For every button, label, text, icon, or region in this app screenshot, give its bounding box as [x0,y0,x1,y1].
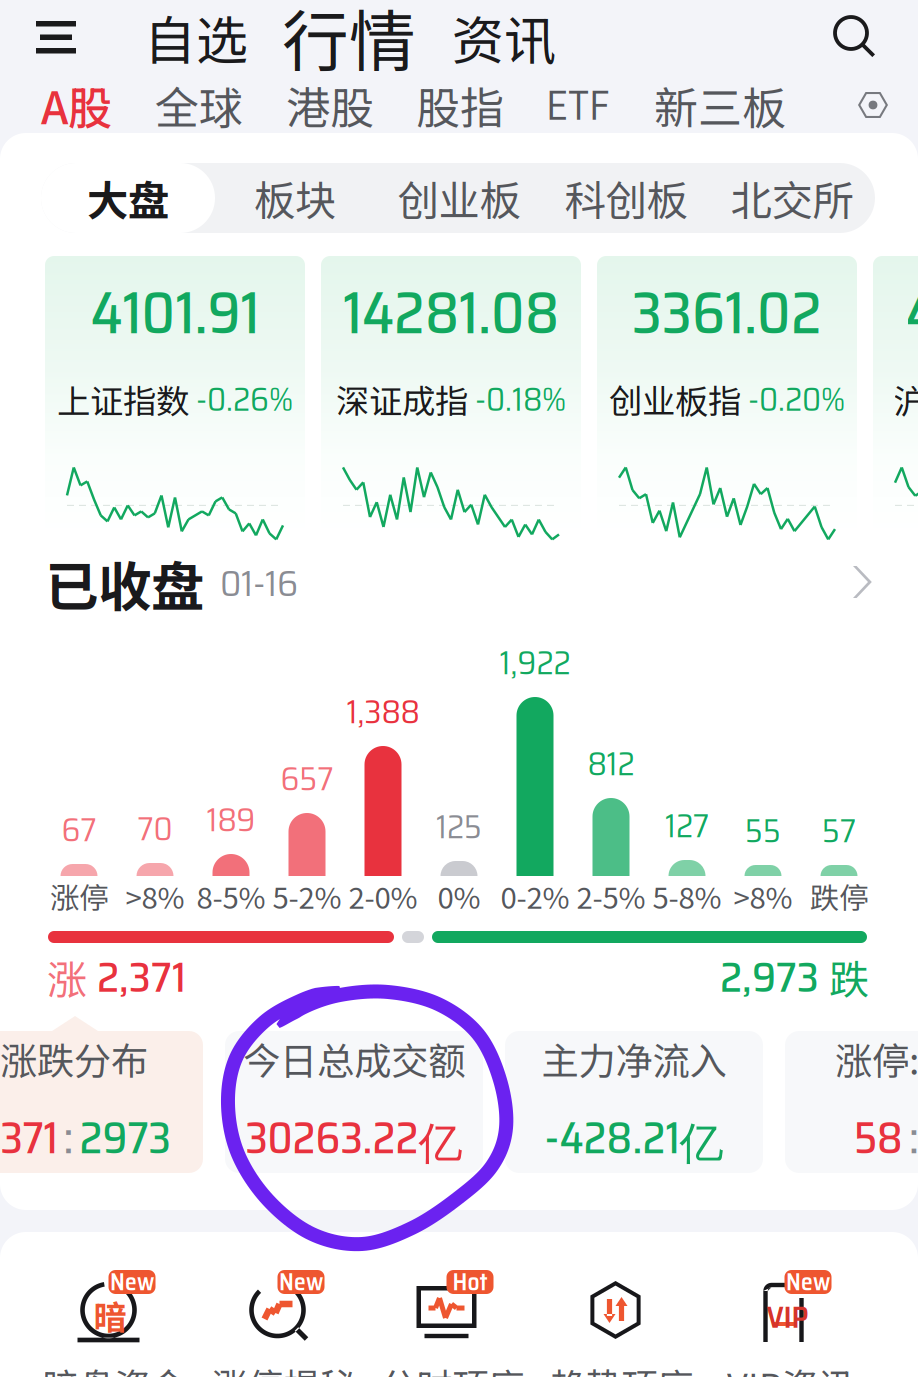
staticText: 跌停 [810,875,868,917]
staticText: New [110,1263,154,1301]
staticText: 沪深300 [893,375,918,423]
staticText: 板块 [254,168,336,228]
button[interactable]: 创业板 [375,163,543,233]
staticText: 北交所 [730,168,853,228]
staticText: : [909,1103,918,1173]
staticText: 125 [436,800,482,853]
staticText: A股 [41,73,112,137]
staticText: 已收盘 [45,544,204,622]
button[interactable]: 今日总成交额 [225,1031,483,1173]
button[interactable]: ETF [546,76,610,134]
button[interactable]: 大盘 [41,163,215,233]
staticText: 01-16 [220,554,298,612]
button[interactable]: A股 [41,76,112,134]
staticText: 行情 [282,0,416,85]
staticText: 跌 [829,948,869,1006]
staticText: 0% [437,875,480,917]
staticText: -0.20% [748,373,845,425]
staticText: 创业板指 [609,375,741,423]
button[interactable]: 14281.08 [321,256,581,536]
staticText: -0.18% [475,373,566,425]
staticText: 涨停 [50,875,108,917]
staticText: 30263.22亿 [245,1103,462,1173]
button[interactable]: 板块 [215,163,375,233]
button[interactable]: 新三板 [654,76,786,134]
staticText: 趋势顶底 [549,1358,693,1377]
staticText: 2973 [79,1103,170,1173]
staticText: -428.21亿 [544,1103,723,1173]
button[interactable]: 4101.91 [45,256,305,536]
button[interactable]: Hot [368,1266,537,1377]
staticText: 67 [61,803,96,856]
staticText: 股指 [416,73,504,137]
staticText: 全球 [155,73,243,137]
staticText: 新三板 [654,73,786,137]
staticText: 创业板 [397,168,520,228]
staticText: 57 [822,804,856,857]
button[interactable]: New [199,1266,368,1377]
button[interactable]: 科创板 [543,163,709,233]
button[interactable]: 已收盘 [45,552,875,614]
button[interactable]: 3361.02 [597,256,857,536]
staticText: 657 [280,752,333,805]
staticText: 4101.91 [90,267,259,359]
staticText: Hot [452,1263,487,1301]
staticText: : [63,1103,73,1173]
button[interactable]: 涨停:跌停 [785,1031,918,1173]
staticText: 2-5% [576,875,645,917]
staticText: 70 [137,802,172,855]
staticText: 2371 [0,1103,57,1173]
staticText: 港股 [286,73,374,137]
staticText: 8-5% [196,875,265,917]
button[interactable]: 4821.40 [873,256,918,536]
staticText: 14281.08 [343,267,559,359]
button[interactable]: 港股 [286,76,374,134]
button[interactable]: 趋势顶底 [537,1266,706,1377]
staticText: 2,371 [97,943,186,1011]
button[interactable]: Scan [844,76,902,134]
staticText: 深证成指 [336,375,468,423]
staticText: -0.26% [196,373,293,425]
staticText: 2-0% [348,875,417,917]
staticText: 上证指数 [57,375,189,423]
staticText: VIP [766,1293,808,1341]
staticText: 科创板 [564,168,687,228]
staticText: ETF [546,71,610,139]
staticText: 812 [587,737,634,790]
button[interactable]: 北交所 [709,163,875,233]
staticText: 4821.40 [905,267,918,359]
staticText: 2,973 [720,943,819,1011]
button[interactable]: VIP [706,1266,875,1377]
staticText: 自选 [144,0,248,75]
staticText: 189 [206,793,255,846]
staticText: 大盘 [87,168,169,228]
button[interactable]: 行情 [282,0,416,74]
button[interactable]: 全球 [155,76,243,134]
staticText: 5-2% [272,875,341,917]
staticText: 0-2% [500,875,569,917]
staticText: 127 [665,799,709,852]
staticText: 涨停揭秘 [211,1358,355,1377]
button[interactable]: 股指 [416,76,504,134]
button[interactable]: 暗 [30,1266,199,1377]
staticText: 涨停:跌停 [835,1031,918,1085]
staticText: >8% [733,875,792,917]
button[interactable]: 涨跌分布 [0,1031,203,1173]
button[interactable]: Search [826,0,882,74]
staticText: 58 [854,1103,903,1173]
button[interactable]: 资讯 [452,0,556,74]
staticText: 55 [745,804,781,857]
button[interactable]: Menu [34,0,78,74]
staticText: 1,388 [346,685,419,738]
button[interactable]: 主力净流入 [505,1031,763,1173]
staticText: >8% [125,875,184,917]
staticText: 主力净流入 [541,1031,726,1085]
staticText: 1,922 [499,636,570,689]
staticText: 涨 [47,948,87,1006]
button[interactable]: 自选 [144,0,248,74]
staticText: 3361.02 [632,267,822,359]
staticText: 资讯 [452,0,556,75]
staticText: 暗盘资金 [42,1358,186,1377]
staticText: 今日总成交额 [243,1031,465,1085]
